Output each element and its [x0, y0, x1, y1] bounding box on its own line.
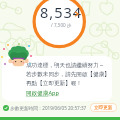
- other: Synced: [3, 105, 9, 111]
- button[interactable]: 成功達標，明天也請繼續努力～: [2, 56, 112, 101]
- staticText: 成功達標，明天也請繼續努力～: [26, 62, 105, 69]
- staticText: 再點【立即更新】喔！: [26, 80, 82, 87]
- button[interactable]: 立即更新: [91, 104, 116, 111]
- staticText: 開啟健康App: [26, 89, 59, 97]
- button[interactable]: 8,534: [34, 2, 89, 32]
- staticText: 若步數未同步，請先開啟【健康】: [26, 71, 110, 78]
- staticText: 步數更新時間：2019/06/05 20:57:37: [9, 105, 87, 111]
- other: Mascot: [0, 40, 34, 68]
- staticText: 立即更新: [94, 105, 113, 111]
- staticText: 8,534: [40, 2, 83, 22]
- staticText: / 7,500 步: [51, 22, 72, 28]
